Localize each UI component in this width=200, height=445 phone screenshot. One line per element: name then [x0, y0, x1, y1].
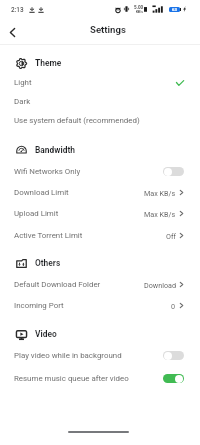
- staticText: Settings: [90, 24, 126, 35]
- staticText: Active Torrent Limit: [14, 231, 83, 240]
- staticText: Max KB/s: [144, 210, 176, 218]
- staticText: Dark: [14, 97, 31, 106]
- staticText: Default Download Folder: [14, 280, 101, 289]
- button[interactable]: Resume music queue after video: [0, 367, 200, 389]
- staticText: Bandwidth: [35, 145, 75, 155]
- staticText: Play video while in background: [14, 351, 122, 360]
- staticText: 5.00: [134, 5, 144, 10]
- staticText: 0: [171, 302, 176, 310]
- button[interactable]: Active Torrent Limit: [0, 225, 200, 246]
- staticText: Incoming Port: [14, 301, 64, 310]
- staticText: Use system default (recommended): [14, 116, 140, 125]
- staticText: Download: [144, 281, 176, 289]
- staticText: 2:13: [11, 6, 24, 14]
- staticText: Wifi Networks Only: [14, 167, 81, 176]
- staticText: Off: [166, 232, 176, 240]
- staticText: Max KB/s: [144, 189, 176, 197]
- button[interactable]: Download Limit: [0, 182, 200, 203]
- button[interactable]: Upload Limit: [0, 203, 200, 224]
- button[interactable]: Incoming Port: [0, 295, 200, 316]
- staticText: Video: [35, 329, 57, 339]
- button[interactable]: Dark: [0, 92, 200, 111]
- staticText: KB/s: [136, 10, 143, 14]
- staticText: Download Limit: [14, 188, 69, 197]
- staticText: Theme: [35, 58, 62, 68]
- button[interactable]: Default Download Folder: [0, 274, 200, 295]
- staticText: 63: [172, 7, 177, 12]
- button[interactable]: Back: [2, 22, 22, 42]
- button[interactable]: Light: [0, 73, 200, 92]
- button[interactable]: Wifi Networks Only: [0, 160, 200, 182]
- staticText: Upload Limit: [14, 209, 59, 218]
- staticText: Others: [35, 258, 61, 268]
- staticText: Resume music queue after video: [14, 374, 129, 383]
- button[interactable]: Use system default (recommended): [0, 111, 200, 130]
- staticText: Light: [14, 78, 32, 87]
- button[interactable]: Play video while in background: [0, 344, 200, 366]
